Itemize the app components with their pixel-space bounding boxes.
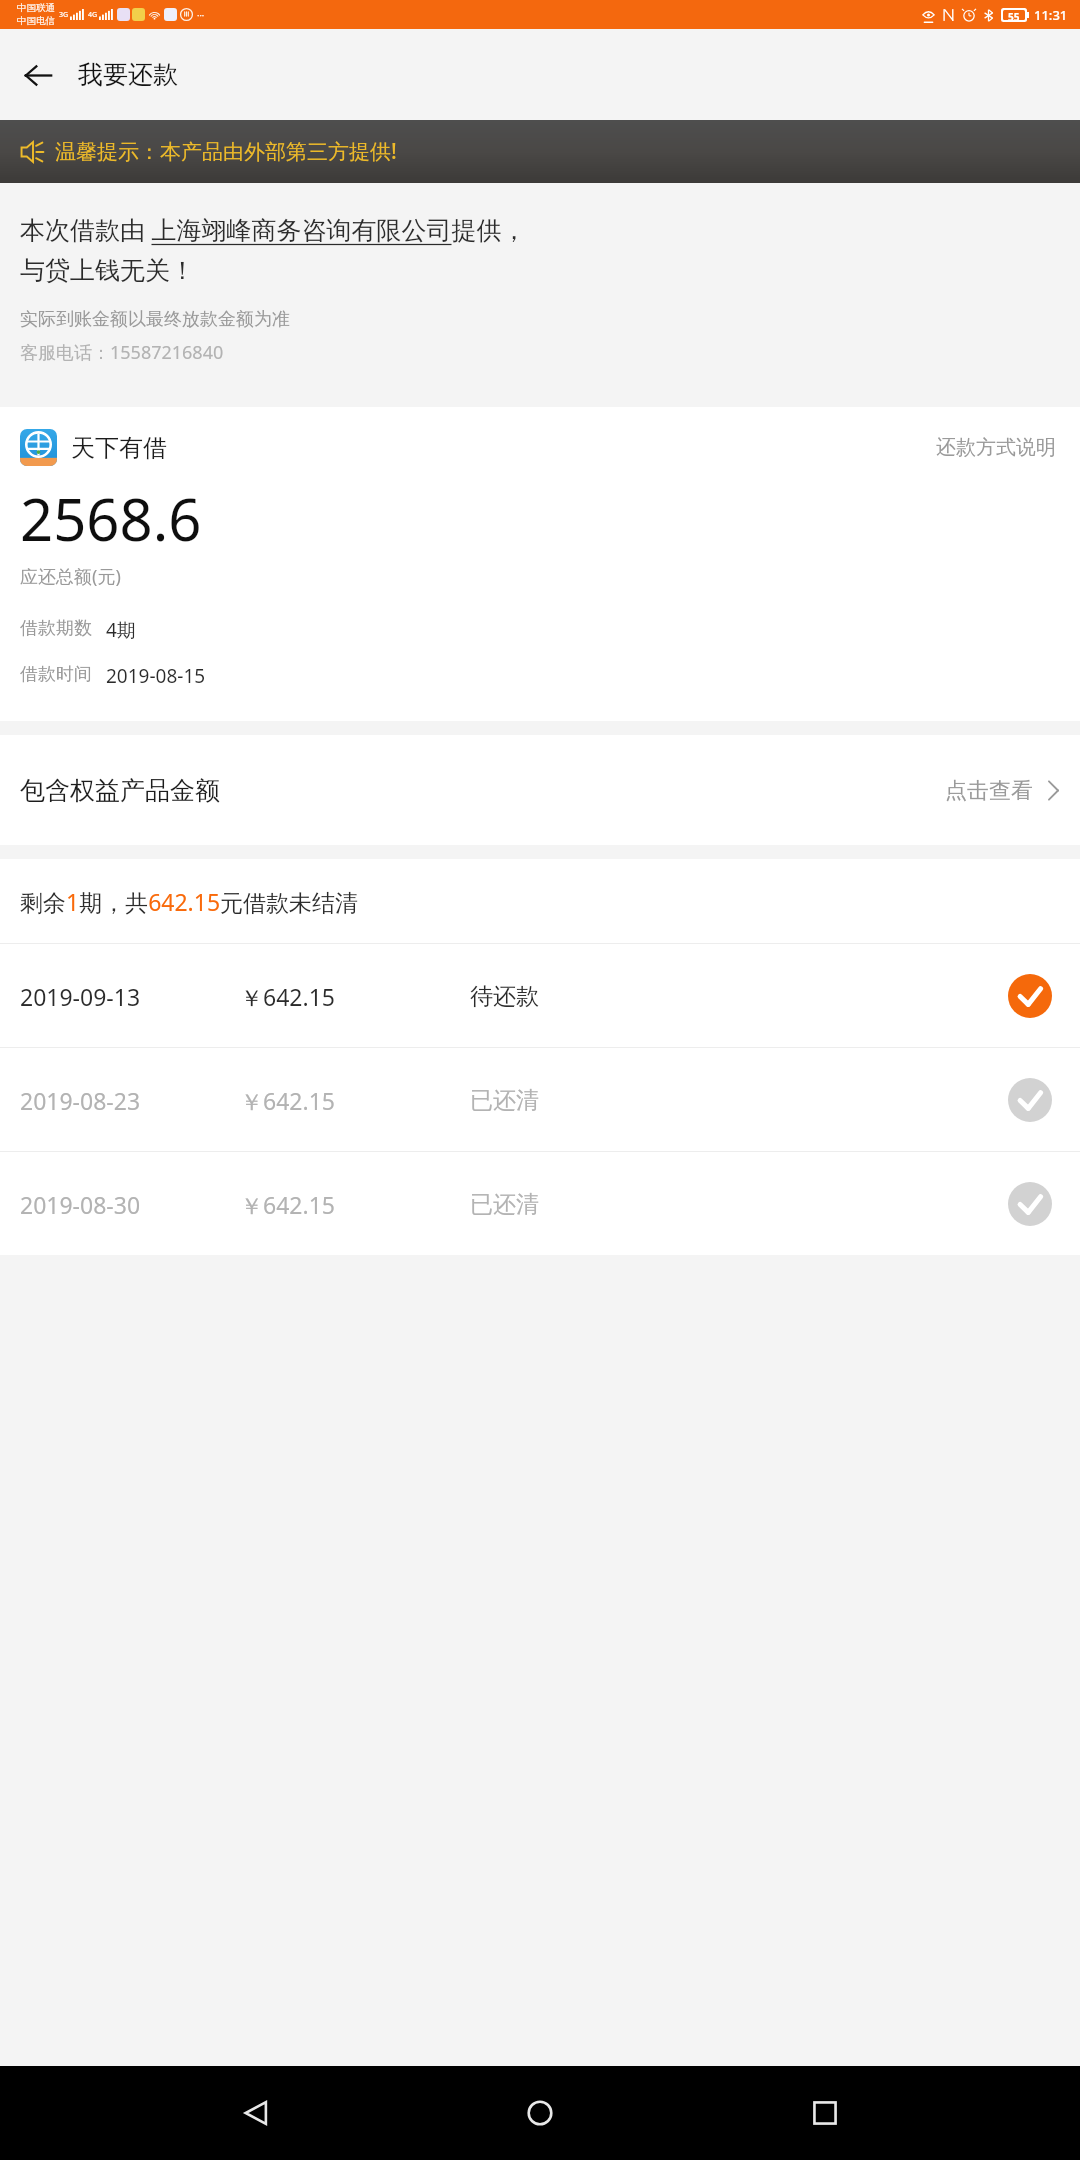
staticText: 4期 bbox=[106, 617, 136, 643]
button[interactable]: 2019-08-30 bbox=[0, 1152, 1080, 1255]
button[interactable]: 2019-09-13 bbox=[0, 944, 1080, 1047]
button[interactable]: 主页 bbox=[511, 2084, 569, 2142]
staticText: 已还清 bbox=[470, 1086, 539, 1115]
staticText: 55 bbox=[1008, 10, 1020, 20]
staticText: 借款期数 bbox=[20, 617, 92, 640]
staticText: 3G bbox=[59, 10, 69, 20]
staticText: 客服电话：15587216840 bbox=[20, 340, 224, 365]
button[interactable]: 最近任务 bbox=[796, 2084, 854, 2142]
staticText: 2019-08-30 bbox=[20, 1189, 141, 1220]
staticText: 我要还款 bbox=[78, 59, 178, 90]
button[interactable]: 返回 bbox=[227, 2084, 285, 2142]
staticText: 温馨提示：本产品由外部第三方提供! bbox=[55, 137, 397, 166]
staticText: 中国电信 bbox=[17, 15, 55, 27]
staticText: 2019-09-13 bbox=[20, 981, 141, 1012]
staticText: ￥642.15 bbox=[240, 1189, 335, 1220]
staticText: 剩余1期，共642.15元借款未结清 bbox=[20, 886, 359, 917]
staticText: 天下有借 bbox=[71, 433, 167, 463]
staticText: 应还总额(元) bbox=[20, 564, 121, 589]
staticText: 2019-08-15 bbox=[106, 663, 206, 689]
staticText: 4G bbox=[88, 10, 98, 20]
staticText: 中国联通 bbox=[17, 2, 55, 14]
button[interactable]: 还款方式说明 bbox=[932, 431, 1060, 464]
button[interactable]: 返回 bbox=[10, 47, 66, 103]
staticText: ￥642.15 bbox=[240, 981, 335, 1012]
staticText: 11:31 bbox=[1034, 6, 1068, 24]
staticText: 已还清 bbox=[470, 1190, 539, 1219]
button[interactable]: 2019-08-23 bbox=[0, 1048, 1080, 1151]
staticText: 2568.6 bbox=[20, 479, 202, 558]
staticText: 本次借款由 上海翊峰商务咨询有限公司提供， 与贷上钱无关！ bbox=[20, 212, 527, 286]
staticText: ￥642.15 bbox=[240, 1085, 335, 1116]
staticText: 借款时间 bbox=[20, 663, 92, 686]
staticText: 实际到账金额以最终放款金额为准 bbox=[20, 308, 290, 331]
staticText: ··· bbox=[197, 9, 205, 21]
staticText: 点击查看 bbox=[945, 777, 1033, 805]
staticText: 包含权益产品金额 bbox=[20, 775, 220, 806]
button[interactable]: 包含权益产品金额 bbox=[0, 735, 1080, 845]
staticText: 还款方式说明 bbox=[936, 435, 1056, 460]
staticText: 2019-08-23 bbox=[20, 1085, 141, 1116]
staticText: 待还款 bbox=[470, 982, 539, 1011]
